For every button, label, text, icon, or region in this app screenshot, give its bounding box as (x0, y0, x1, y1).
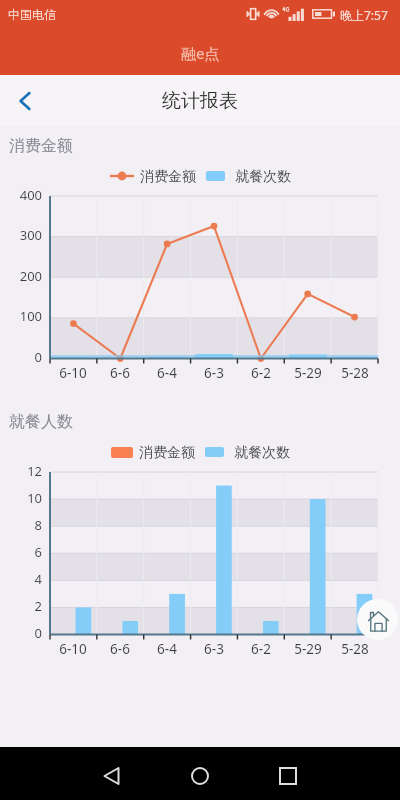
staticText: 2 (34, 597, 42, 615)
button[interactable]: Home (180, 756, 220, 796)
staticText: 消费金额 (9, 136, 73, 156)
staticText: 统计报表 (162, 89, 238, 113)
staticText: 5-28 (341, 364, 369, 382)
staticText: 5-29 (294, 640, 322, 658)
staticText: 6-2 (251, 364, 271, 382)
button[interactable]: Recent apps (268, 756, 308, 796)
staticText: 6-10 (59, 640, 87, 658)
button[interactable]: Back (92, 756, 132, 796)
staticText: 10 (27, 489, 42, 507)
staticText: 6-6 (110, 640, 130, 658)
staticText: 100 (19, 307, 42, 325)
staticText: 融e点 (181, 43, 220, 63)
button[interactable]: Back (0, 75, 50, 126)
staticText: 6-4 (157, 640, 177, 658)
staticText: 就餐人数 (9, 412, 73, 432)
staticText: 400 (19, 186, 42, 204)
staticText: 4 (34, 570, 42, 588)
staticText: 5-28 (341, 640, 369, 658)
staticText: 就餐次数 (234, 444, 290, 460)
button[interactable]: Home (357, 599, 398, 640)
staticText: 6 (34, 543, 42, 561)
staticText: 8 (34, 516, 42, 534)
staticText: 5-29 (294, 364, 322, 382)
staticText: 消费金额 (139, 444, 195, 460)
staticText: 200 (19, 267, 42, 285)
staticText: 就餐次数 (235, 168, 291, 184)
staticText: 中国电信 (8, 7, 56, 22)
staticText: 晚上7:57 (340, 7, 388, 23)
staticText: 6-3 (204, 364, 224, 382)
staticText: 6-4 (157, 364, 177, 382)
staticText: 0 (34, 624, 42, 642)
staticText: 0 (34, 348, 42, 366)
staticText: 6-10 (59, 364, 87, 382)
staticText: 6-2 (251, 640, 271, 658)
staticText: 300 (19, 226, 42, 244)
staticText: 12 (27, 462, 42, 480)
staticText: 6-6 (110, 364, 130, 382)
staticText: 消费金额 (140, 168, 196, 184)
staticText: 6-3 (204, 640, 224, 658)
